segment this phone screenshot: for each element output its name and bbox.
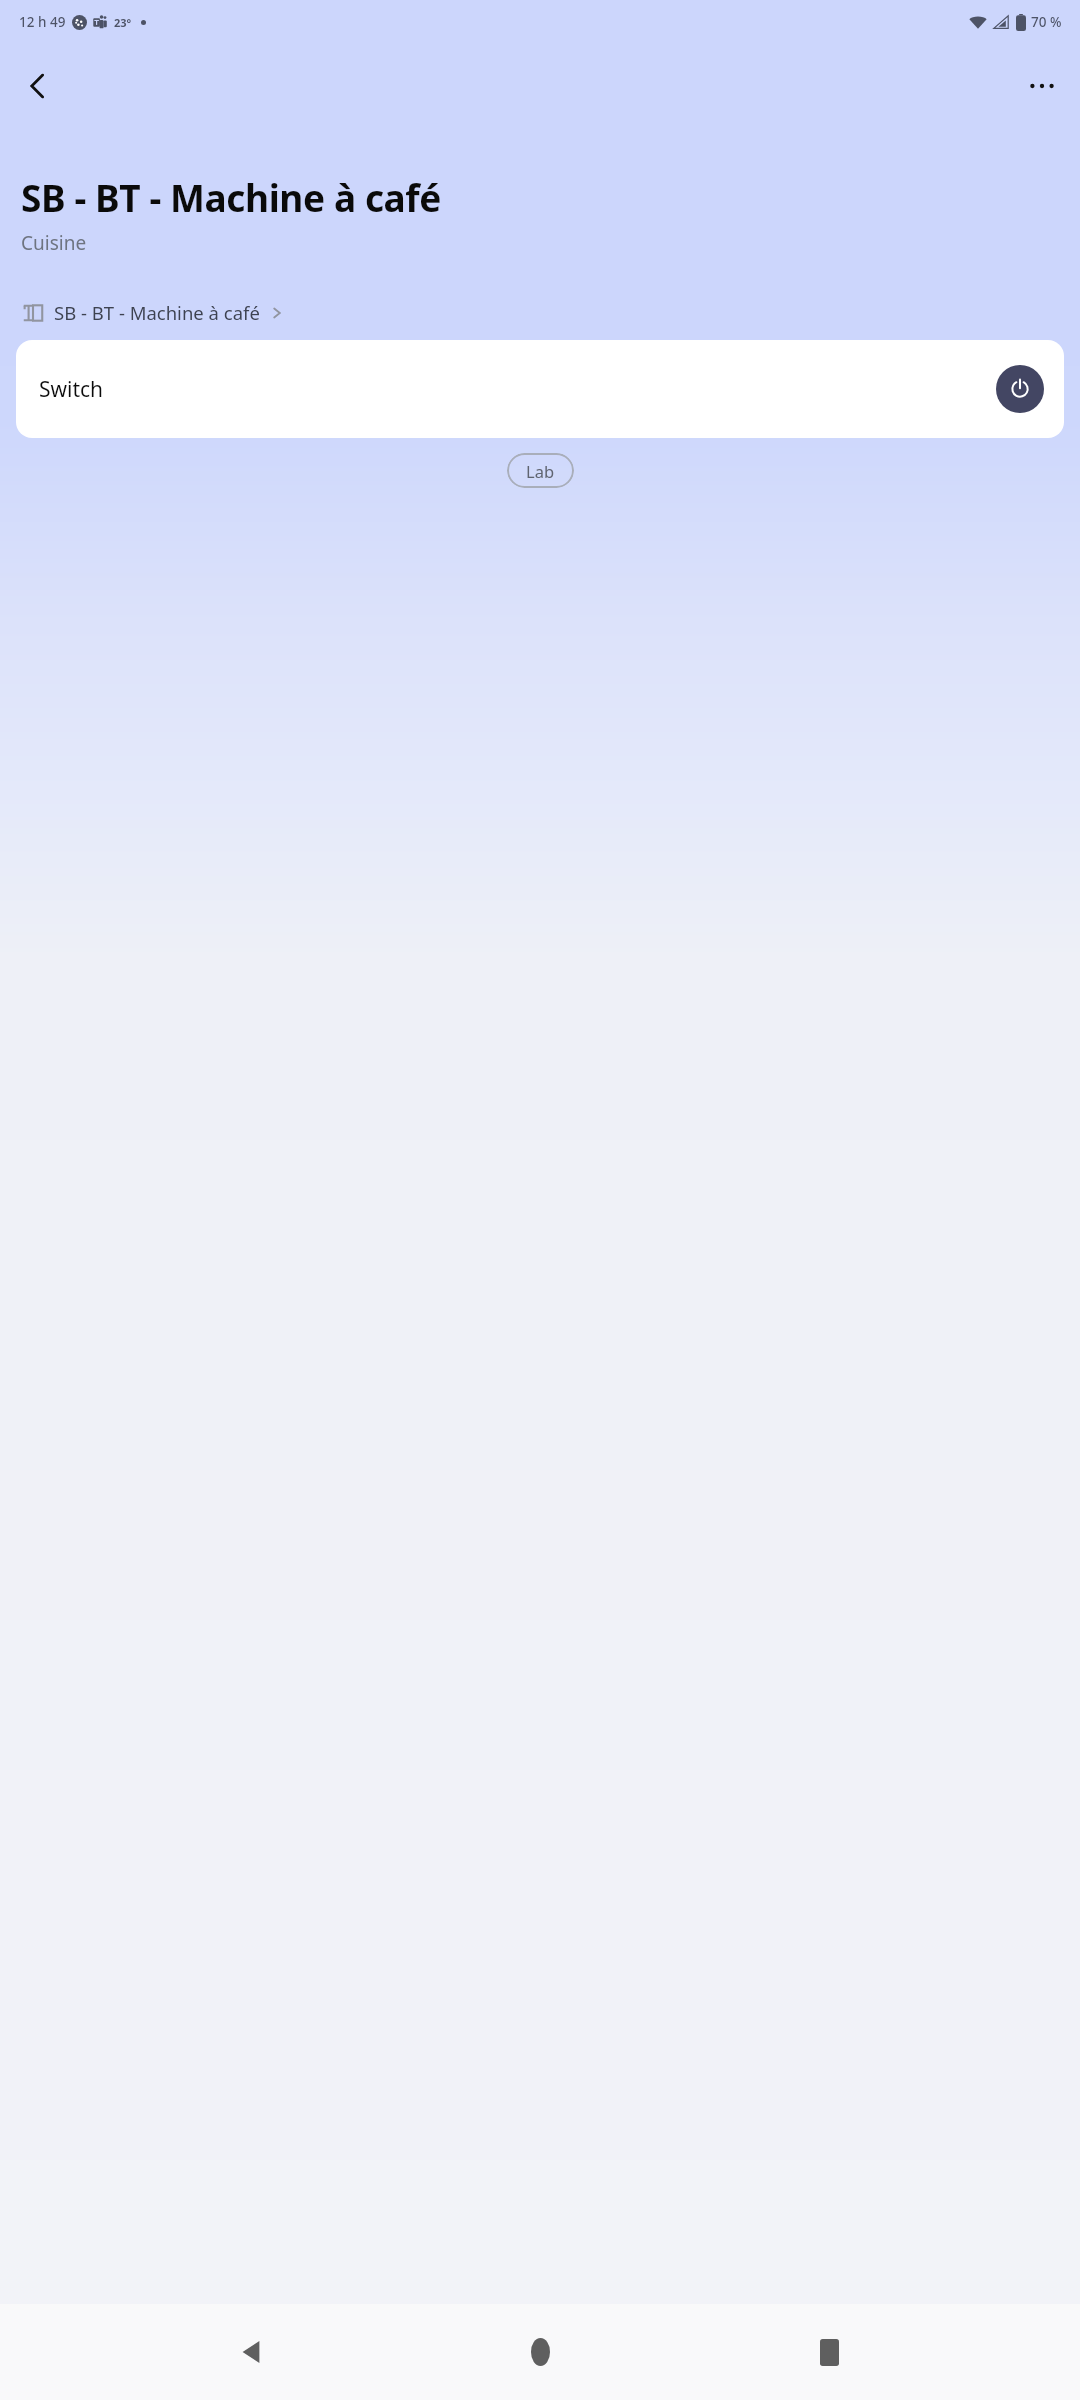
button[interactable]: More options: [1014, 58, 1070, 114]
button[interactable]: Back: [213, 2314, 289, 2390]
button[interactable]: Recent apps: [791, 2314, 867, 2390]
button[interactable]: Home: [502, 2314, 578, 2390]
button[interactable]: Lab: [507, 453, 574, 488]
button[interactable]: Back: [10, 58, 66, 114]
button[interactable]: Switch: [16, 340, 1064, 438]
staticText: 23°: [114, 15, 132, 30]
staticText: 70 %: [1031, 13, 1062, 31]
staticText: Lab: [526, 460, 555, 482]
button[interactable]: SB - BT - Machine à café: [18, 296, 288, 329]
staticText: 12 h 49: [19, 13, 66, 31]
button[interactable]: Power toggle: [996, 365, 1044, 413]
staticText: Cuisine: [21, 230, 87, 256]
staticText: SB - BT - Machine à café: [54, 300, 260, 325]
staticText: Switch: [39, 375, 104, 404]
staticText: SB - BT - Machine à café: [21, 172, 441, 222]
